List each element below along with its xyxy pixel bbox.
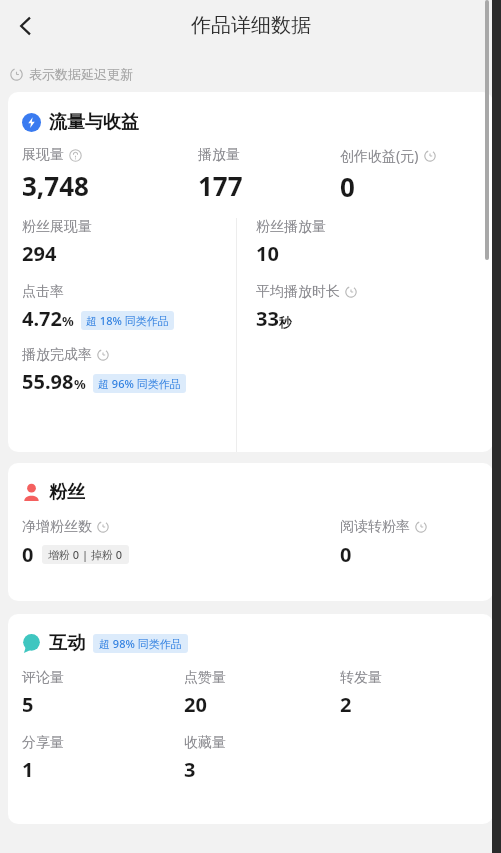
staticText: 流量与收益 [49,111,139,134]
button[interactable]: 分享量 [22,734,184,783]
staticText: 阅读转粉率 [340,518,410,536]
button[interactable]: 粉丝播放量 [256,218,326,267]
button[interactable]: Back [4,4,48,48]
staticText: 播放量 [198,146,240,164]
staticText: 秒 [279,314,292,330]
staticText: 粉丝 [49,481,85,504]
button[interactable]: 评论量 [22,669,184,718]
staticText: % [62,312,74,330]
button[interactable]: 播放完成率 [22,346,186,395]
staticText: 3 [184,756,196,783]
staticText: 294 [22,240,57,267]
staticText: 177 [198,168,243,203]
staticText: 0 [22,541,34,568]
staticText: 净增粉丝数 [22,518,92,536]
button[interactable]: 展现量 [22,146,198,203]
staticText: 平均播放时长 [256,283,340,301]
staticText: 0 [340,169,355,204]
staticText: 增粉 0 | 掉粉 0 [48,547,123,562]
staticText: 作品详细数据 [191,13,311,38]
button[interactable]: 粉丝展现量 [22,218,92,267]
staticText: 分享量 [22,734,64,752]
button[interactable]: 转发量 [340,669,460,718]
staticText: 1 [22,756,34,783]
staticText: 超 96% 同类作品 [98,376,181,391]
staticText: 0 [340,541,352,568]
staticText: % [74,375,86,393]
staticText: 2 [340,691,352,718]
staticText: 评论量 [22,669,64,687]
button[interactable]: 点赞量 [184,669,340,718]
staticText: 33 [256,305,279,332]
staticText: 20 [184,691,207,718]
staticText: 粉丝展现量 [22,218,92,236]
staticText: 超 18% 同类作品 [86,313,169,328]
button[interactable]: 收藏量 [184,734,340,783]
staticText: 表示数据延迟更新 [29,66,133,82]
staticText: 10 [256,240,279,267]
staticText: 5 [22,691,34,718]
staticText: 点击率 [22,283,64,301]
staticText: 粉丝播放量 [256,218,326,236]
staticText: 3,748 [22,168,89,203]
button[interactable]: 播放量 [198,146,340,203]
staticText: 创作收益(元) [340,146,419,165]
staticText: 4.72 [22,305,62,332]
button[interactable]: 创作收益(元) [340,146,490,204]
staticText: 55.98 [22,368,74,395]
button[interactable]: 平均播放时长 [256,283,357,332]
staticText: 超 98% 同类作品 [99,636,182,651]
staticText: 点赞量 [184,669,226,687]
staticText: 收藏量 [184,734,226,752]
staticText: 播放完成率 [22,346,92,364]
staticText: 互动 [49,632,85,655]
staticText: 转发量 [340,669,382,687]
button[interactable]: 点击率 [22,283,174,332]
staticText: 展现量 [22,146,64,164]
